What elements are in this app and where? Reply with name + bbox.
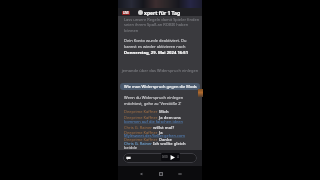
staticText: Wie man Widerspruch gegen die Mods (124, 84, 197, 89)
staticText: LIVE (123, 11, 129, 15)
staticText: Deeprime Kaffner (124, 137, 158, 142)
staticText: Deeprime Kaffner (124, 130, 158, 135)
staticText: Dein Konto wurde deaktiviert. Du (124, 38, 187, 43)
staticText: möchtest, gehe zu ‘Verstöße 2’ (124, 101, 182, 106)
button[interactable]: Emoji (123, 153, 197, 163)
staticText: Ich wollte gleich (153, 141, 186, 146)
staticText: seien ihrem Spaß an ROBIX haben (124, 22, 189, 27)
button[interactable]: 0:00 (161, 153, 180, 161)
staticText: Ja (159, 130, 163, 135)
staticText: jemande über das Widerspruch einlegen (118, 68, 202, 73)
button[interactable]: kommen auf die falschen ideen (124, 119, 183, 124)
staticText: Deeprime Kaffner (124, 115, 158, 120)
button[interactable]: Deeprime Kaffner (124, 130, 163, 135)
staticText: Chris G. Rainer (124, 125, 152, 130)
staticText: 0:00 (162, 155, 168, 159)
button[interactable]: LIVE (118, 8, 202, 16)
button[interactable]: Deeprime Kaffner (124, 115, 181, 120)
other: Emoji (126, 156, 131, 160)
staticText: können (124, 28, 139, 33)
button[interactable]: Home (156, 169, 165, 178)
other: Play (169, 154, 176, 161)
button[interactable]: Deeprime Kaffner (124, 109, 169, 114)
button[interactable]: Recents (175, 169, 184, 178)
staticText: Ja dem uns (159, 115, 181, 120)
button[interactable]: Mylesweet.der/lieber.gehen.com (124, 133, 186, 138)
staticText: Chris G. Rainer (124, 141, 152, 146)
button[interactable]: Back (136, 169, 145, 178)
button[interactable]: Deeprime Kaffner (124, 137, 172, 142)
button[interactable]: Chris G. Rainer (124, 125, 175, 130)
staticText: 4 (177, 155, 179, 159)
staticText: kannst es wieder aktivieren nach (124, 44, 186, 49)
staticText: Lass unsere Regeln damit Spieler finden (124, 17, 200, 22)
staticText: willst mal? (153, 125, 175, 130)
staticText: Mich (159, 109, 169, 114)
staticText: Danke (159, 137, 172, 142)
staticText: beidde (124, 145, 137, 150)
staticText: xpert für 1 Tag (144, 10, 181, 17)
staticText: Deeprime Kaffner (124, 109, 158, 114)
staticText: Donnerstag, 29. Mai 2024 16:51 (124, 50, 189, 56)
button[interactable]: Wie man Widerspruch gegen die Mods (120, 83, 200, 90)
button[interactable]: Chris G. Rainer (124, 141, 186, 146)
staticText: Wenn du Widerspruch einlegen (124, 95, 184, 100)
